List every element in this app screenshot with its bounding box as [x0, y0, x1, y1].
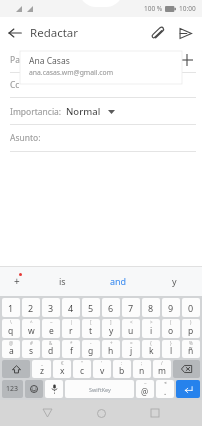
button[interactable]: Enter	[176, 380, 200, 398]
button[interactable]: "	[73, 360, 91, 378]
staticText: '	[101, 360, 103, 366]
staticText: >	[150, 319, 153, 325]
button[interactable]: }	[162, 340, 180, 358]
staticText: %	[189, 340, 193, 346]
staticText: p	[188, 325, 194, 337]
button[interactable]: ~	[42, 319, 60, 338]
button[interactable]: (	[162, 319, 180, 338]
button[interactable]: /	[153, 360, 171, 378]
button[interactable]: <	[122, 319, 140, 338]
staticText: Importancia:	[10, 106, 62, 118]
button[interactable]: Back	[29, 400, 65, 426]
staticText: Redactar	[30, 25, 79, 41]
button[interactable]: Attach file	[143, 19, 171, 47]
button[interactable]: Importancia:	[0, 98, 202, 124]
button[interactable]: )	[182, 319, 200, 338]
button[interactable]: Shift	[2, 360, 30, 378]
staticText: Para:	[10, 54, 31, 66]
button[interactable]: €	[53, 360, 71, 378]
staticText: 8	[148, 302, 154, 314]
button[interactable]: *	[62, 340, 80, 358]
staticText: 123	[6, 384, 19, 394]
button[interactable]: 0	[182, 298, 200, 317]
button[interactable]: 3	[42, 298, 60, 317]
staticText: 5	[88, 302, 94, 314]
button[interactable]: {	[142, 340, 160, 358]
button[interactable]: @	[2, 340, 20, 358]
staticText: l	[170, 345, 173, 357]
button[interactable]: Ana Casas	[20, 51, 182, 84]
staticText: Ana	[34, 54, 50, 66]
button[interactable]: Send	[171, 19, 199, 47]
button[interactable]: and	[90, 266, 146, 296]
button[interactable]: +	[102, 340, 120, 358]
staticText: and	[110, 275, 127, 287]
staticText: 1	[8, 302, 14, 314]
button[interactable]: %	[182, 340, 200, 358]
button[interactable]: Cc	[0, 73, 202, 97]
button[interactable]: \	[2, 319, 20, 338]
staticText: )	[190, 319, 192, 325]
button[interactable]: ~	[136, 380, 154, 398]
staticText: .	[164, 386, 167, 397]
button[interactable]: More suggestions	[0, 266, 34, 296]
button[interactable]: &	[42, 340, 60, 358]
button[interactable]: Add recipient	[177, 50, 197, 70]
staticText: Asunto:	[10, 132, 41, 144]
button[interactable]: Recents	[137, 400, 173, 426]
button[interactable]: ;	[133, 360, 151, 378]
staticText: k	[149, 345, 154, 357]
staticText: ~	[50, 319, 53, 325]
staticText: 7	[128, 302, 134, 314]
button[interactable]: 4	[62, 298, 80, 317]
button[interactable]: 7	[122, 298, 140, 317]
staticText: c	[80, 365, 85, 377]
button[interactable]: ◂	[156, 380, 174, 398]
button[interactable]: #	[22, 340, 40, 358]
button[interactable]: Back	[0, 18, 30, 48]
staticText: ◂	[164, 380, 167, 385]
button[interactable]: Asunto:	[0, 125, 202, 151]
button[interactable]: Backspace	[173, 360, 200, 378]
button[interactable]: ^	[22, 319, 40, 338]
button[interactable]: -	[82, 340, 100, 358]
staticText: e	[49, 325, 54, 337]
button[interactable]: y	[146, 266, 202, 296]
staticText: y	[109, 325, 114, 337]
staticText: Ana Casas	[29, 55, 70, 67]
button[interactable]: 8	[142, 298, 160, 317]
staticText: w	[28, 325, 35, 337]
staticText: j	[130, 345, 133, 357]
button[interactable]: |	[62, 319, 80, 338]
button[interactable]: Numbers	[2, 380, 23, 398]
staticText: <	[130, 319, 133, 325]
button[interactable]: :	[113, 360, 131, 378]
button[interactable]: '	[93, 360, 111, 378]
staticText: "	[81, 360, 83, 366]
staticText: z	[40, 365, 44, 377]
button[interactable]: Para:	[0, 48, 202, 72]
staticText: _	[41, 360, 43, 366]
staticText: ñ	[188, 345, 194, 357]
button[interactable]: 5	[82, 298, 100, 317]
staticText: m	[158, 365, 166, 377]
button[interactable]: Emoji	[25, 380, 43, 398]
button[interactable]: Voice input	[45, 380, 63, 398]
button[interactable]: [	[82, 319, 100, 338]
staticText: \	[10, 319, 12, 325]
button[interactable]: =	[122, 340, 140, 358]
button[interactable]: 2	[22, 298, 40, 317]
button[interactable]: 1	[2, 298, 20, 317]
staticText: 3	[48, 302, 54, 314]
button[interactable]: 6	[102, 298, 120, 317]
button[interactable]: Home	[83, 400, 119, 426]
staticText: h	[108, 345, 114, 357]
staticText: 10:00	[179, 4, 196, 13]
button[interactable]: is	[34, 266, 90, 296]
button[interactable]: _	[32, 360, 51, 378]
button[interactable]: ]	[102, 319, 120, 338]
staticText: v	[100, 365, 105, 377]
button[interactable]: Space	[65, 380, 134, 398]
button[interactable]: >	[142, 319, 160, 338]
button[interactable]: 9	[162, 298, 180, 317]
